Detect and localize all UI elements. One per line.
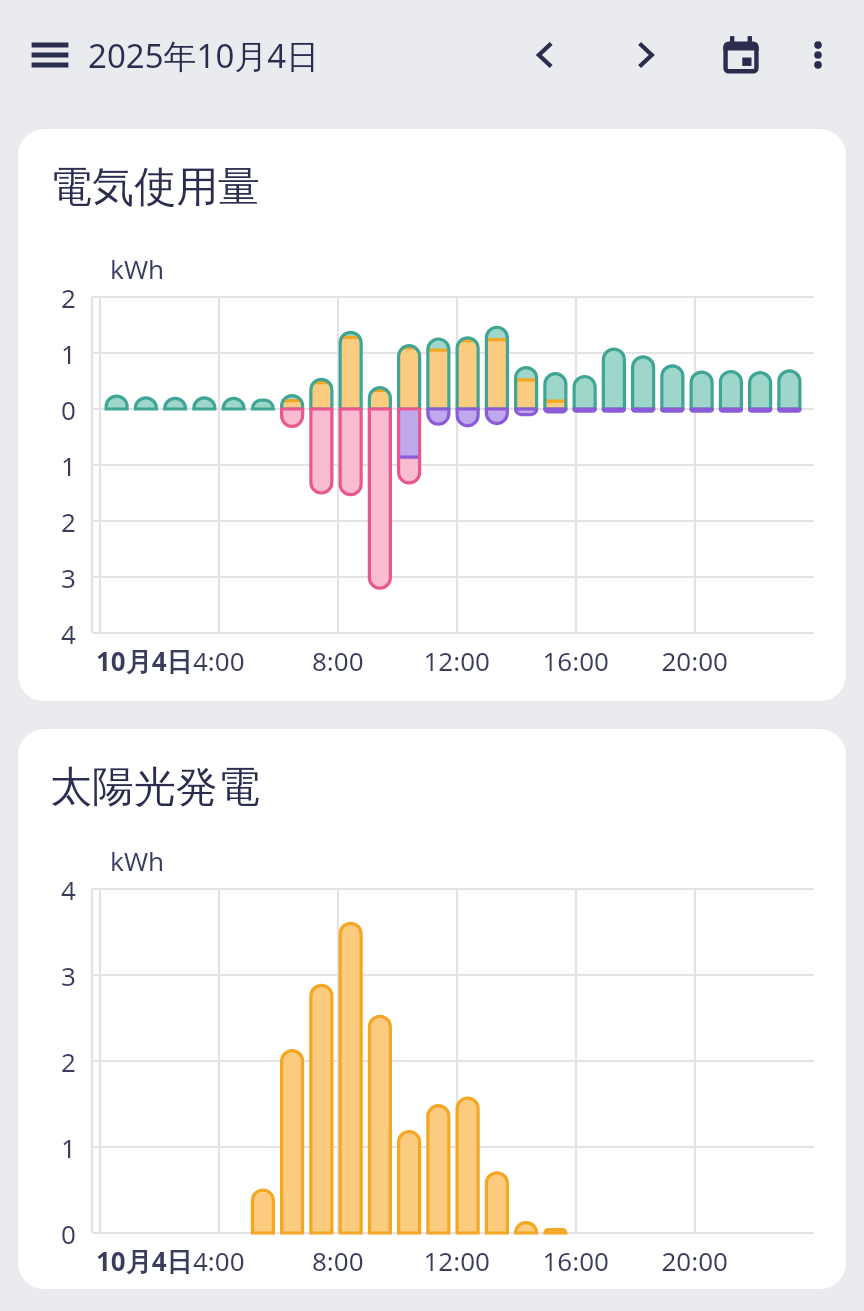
button[interactable]: Previous day bbox=[512, 22, 578, 88]
button[interactable] bbox=[18, 129, 846, 701]
button[interactable]: Jump to today bbox=[708, 22, 774, 88]
button[interactable]: More options bbox=[788, 25, 848, 85]
button[interactable] bbox=[88, 20, 398, 90]
button[interactable]: Menu bbox=[20, 25, 80, 85]
button[interactable] bbox=[18, 729, 846, 1289]
button[interactable]: Next day bbox=[612, 22, 678, 88]
